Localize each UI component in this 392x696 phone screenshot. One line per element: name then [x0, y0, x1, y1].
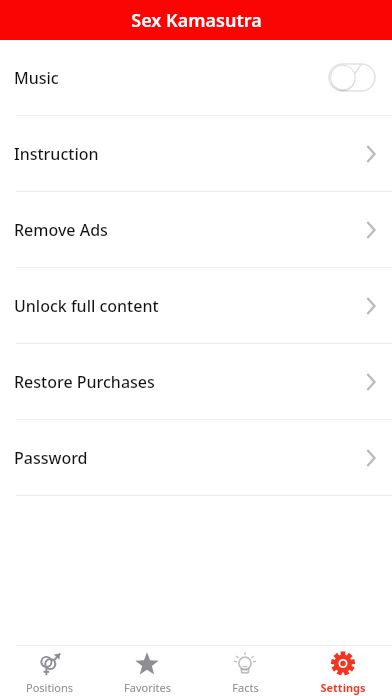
button[interactable]: Restore Purchases — [0, 344, 392, 419]
staticText: Sex Kamasutra — [131, 8, 262, 33]
staticText: Remove Ads — [14, 219, 366, 241]
staticText: Music — [14, 67, 329, 89]
button[interactable]: Settings — [294, 647, 392, 695]
button[interactable]: Positions — [0, 647, 98, 695]
staticText: Positions — [26, 680, 73, 695]
button[interactable]: Facts — [196, 647, 294, 695]
staticText: Restore Purchases — [14, 371, 366, 393]
staticText: Settings — [320, 680, 366, 695]
button[interactable]: Favorites — [98, 647, 196, 695]
staticText: Favorites — [124, 680, 171, 695]
staticText: Instruction — [14, 143, 366, 165]
button[interactable]: Instruction — [0, 116, 392, 191]
button[interactable]: Remove Ads — [0, 192, 392, 267]
button[interactable]: Music toggle — [329, 64, 375, 91]
button[interactable]: Unlock full content — [0, 268, 392, 343]
staticText: Password — [14, 447, 366, 469]
button[interactable]: Password — [0, 420, 392, 495]
button[interactable]: Music — [0, 40, 392, 115]
staticText: Facts — [232, 680, 259, 695]
staticText: Unlock full content — [14, 295, 366, 317]
